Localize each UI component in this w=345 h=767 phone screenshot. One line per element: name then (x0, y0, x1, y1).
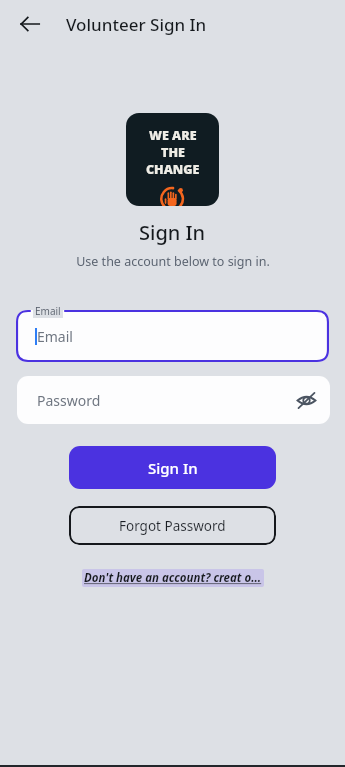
staticText: Email (35, 304, 61, 318)
button[interactable]: Don't have an account? creat o... (82, 569, 264, 587)
button[interactable]: Sign In (69, 446, 276, 489)
staticText: Sign In (148, 458, 198, 478)
staticText: Forgot Password (119, 517, 226, 535)
staticText: WE ARE (149, 127, 197, 144)
staticText: Sign In (139, 219, 206, 246)
button[interactable]: Back (10, 4, 50, 44)
button[interactable]: Show password (288, 382, 324, 418)
staticText: Don't have an account? creat o... (84, 570, 262, 586)
staticText: Use the account below to sign in. (76, 253, 270, 270)
staticText: CHANGE (146, 161, 200, 178)
staticText: Volunteer Sign In (66, 13, 207, 36)
button[interactable]: Email (16, 310, 329, 362)
staticText: THE (161, 144, 185, 161)
staticText: Email (37, 327, 73, 346)
button[interactable]: Forgot Password (69, 506, 276, 545)
button[interactable]: Password (17, 376, 330, 424)
staticText: Password (37, 391, 101, 410)
